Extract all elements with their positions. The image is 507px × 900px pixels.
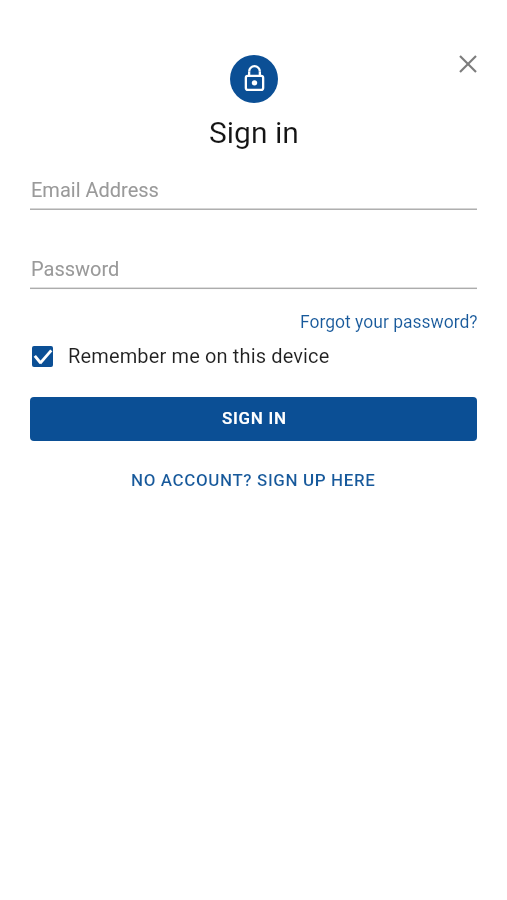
staticText: Forgot your password? — [300, 312, 478, 333]
button[interactable]: SIGN IN — [30, 397, 477, 441]
staticText: SIGN IN — [222, 408, 287, 428]
staticText: Remember me on this device — [68, 344, 330, 367]
button[interactable]: Close — [445, 41, 491, 87]
button[interactable]: Email Address — [30, 170, 477, 209]
button[interactable]: Password — [30, 249, 477, 288]
staticText: Password — [31, 257, 120, 280]
button[interactable]: Remember me on this device — [31, 344, 330, 367]
button[interactable]: Forgot your password? — [300, 312, 478, 333]
staticText: Email Address — [31, 178, 159, 201]
staticText: Sign in — [209, 115, 299, 150]
staticText: NO ACCOUNT? SIGN UP HERE — [131, 470, 376, 490]
button[interactable]: NO ACCOUNT? SIGN UP HERE — [131, 470, 376, 490]
